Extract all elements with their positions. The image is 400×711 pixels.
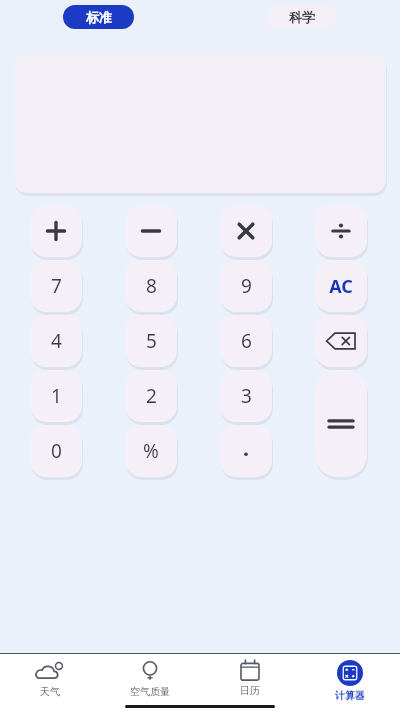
button[interactable]: 3 [220,370,272,422]
staticText: 8 [146,273,157,299]
staticText: 3 [241,383,252,409]
button[interactable]: 科学 [266,5,337,29]
button[interactable]: 9 [220,260,272,312]
staticText: 0 [51,438,62,464]
staticText: 4 [51,328,62,354]
button[interactable]: % [125,425,177,477]
button[interactable]: 计算器 [300,655,400,705]
button[interactable]: 4 [30,315,82,367]
button[interactable]: 标准 [63,5,134,29]
button[interactable]: 0 [30,425,82,477]
staticText: 2 [146,383,157,409]
staticText: AC [329,274,353,299]
staticText: 7 [51,273,62,299]
staticText: 日历 [240,684,260,697]
staticText: 天气 [40,685,60,698]
staticText: 6 [241,328,252,354]
button[interactable]: Multiply [220,205,272,257]
staticText: 1 [51,383,62,409]
staticText: 5 [146,328,157,354]
button[interactable]: 2 [125,370,177,422]
button[interactable]: 1 [30,370,82,422]
staticText: 科学 [289,9,315,25]
button[interactable]: 7 [30,260,82,312]
button[interactable]: 8 [125,260,177,312]
button[interactable]: 日历 [200,655,300,705]
button[interactable]: Backspace [315,315,367,367]
button[interactable]: AC [315,260,367,312]
button[interactable]: Plus [30,205,82,257]
staticText: 空气质量 [130,685,170,698]
button[interactable]: 6 [220,315,272,367]
button[interactable]: 5 [125,315,177,367]
staticText: 标准 [86,9,112,25]
button[interactable]: Decimal point [220,425,272,477]
button[interactable]: Minus [125,205,177,257]
button[interactable]: Divide [315,205,367,257]
staticText: 计算器 [335,689,365,702]
staticText: 9 [241,273,252,299]
button[interactable]: Equals [315,370,367,477]
button[interactable]: 空气质量 [100,655,200,705]
button[interactable]: 天气 [0,655,100,705]
staticText: % [143,438,159,464]
